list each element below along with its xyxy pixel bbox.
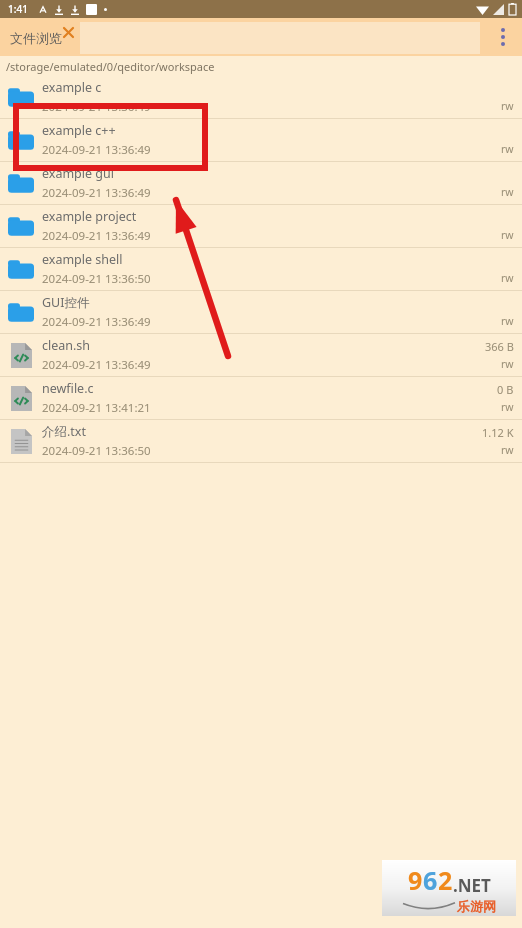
staticText: /storage/emulated/0/qeditor/workspace [6, 59, 215, 74]
staticText: 2024-09-21 13:36:50 [42, 443, 151, 459]
staticText: 2024-09-21 13:41:21 [42, 400, 151, 416]
staticText: example gui [42, 165, 114, 182]
staticText: 2024-09-21 13:36:49 [42, 357, 151, 373]
staticText: 366 B [485, 339, 514, 354]
staticText: rw [501, 142, 514, 156]
staticText: example shell [42, 251, 123, 268]
staticText: example c [42, 79, 102, 96]
staticText: rw [501, 185, 514, 199]
staticText: 介绍.txt [42, 423, 86, 440]
staticText: 2024-09-21 13:36:49 [42, 314, 151, 330]
button[interactable]: newfile.c [0, 377, 522, 420]
staticText: rw [501, 271, 514, 285]
staticText: 乐游网 [457, 898, 496, 914]
button[interactable]: example gui [0, 162, 522, 205]
staticText: rw [501, 99, 514, 113]
staticText: rw [501, 443, 514, 457]
button[interactable]: example project [0, 205, 522, 248]
staticText: example project [42, 208, 137, 225]
staticText: 2 [438, 863, 453, 897]
button[interactable]: Close tab [60, 24, 76, 40]
staticText: 0 B [497, 382, 514, 397]
staticText: clean.sh [42, 337, 91, 354]
staticText: 2024-09-21 13:36:50 [42, 271, 151, 287]
staticText: .NET [453, 874, 491, 897]
staticText: example c++ [42, 122, 116, 139]
staticText: rw [501, 228, 514, 242]
staticText: 2024-09-21 13:36:49 [42, 99, 151, 115]
staticText: 2024-09-21 13:36:49 [42, 228, 151, 244]
staticText: GUI控件 [42, 294, 90, 311]
button[interactable]: example c [0, 76, 522, 119]
staticText: 1:41 [8, 2, 28, 16]
staticText: rw [501, 314, 514, 328]
staticText: newfile.c [42, 380, 94, 397]
staticText: 文件浏览 [10, 30, 62, 46]
button[interactable]: clean.sh [0, 334, 522, 377]
staticText: 2024-09-21 13:36:49 [42, 142, 151, 158]
staticText: 6 [423, 863, 438, 897]
staticText: 2024-09-21 13:36:49 [42, 185, 151, 201]
staticText: rw [501, 357, 514, 371]
staticText: 9 [408, 863, 423, 897]
button[interactable]: example shell [0, 248, 522, 291]
staticText: 1.12 K [482, 425, 514, 440]
button[interactable]: GUI控件 [0, 291, 522, 334]
staticText: rw [501, 400, 514, 414]
button[interactable]: example c++ [0, 119, 522, 162]
button[interactable]: More options [484, 18, 522, 56]
button[interactable]: 文件浏览 [0, 18, 80, 56]
button[interactable]: 介绍.txt [0, 420, 522, 463]
